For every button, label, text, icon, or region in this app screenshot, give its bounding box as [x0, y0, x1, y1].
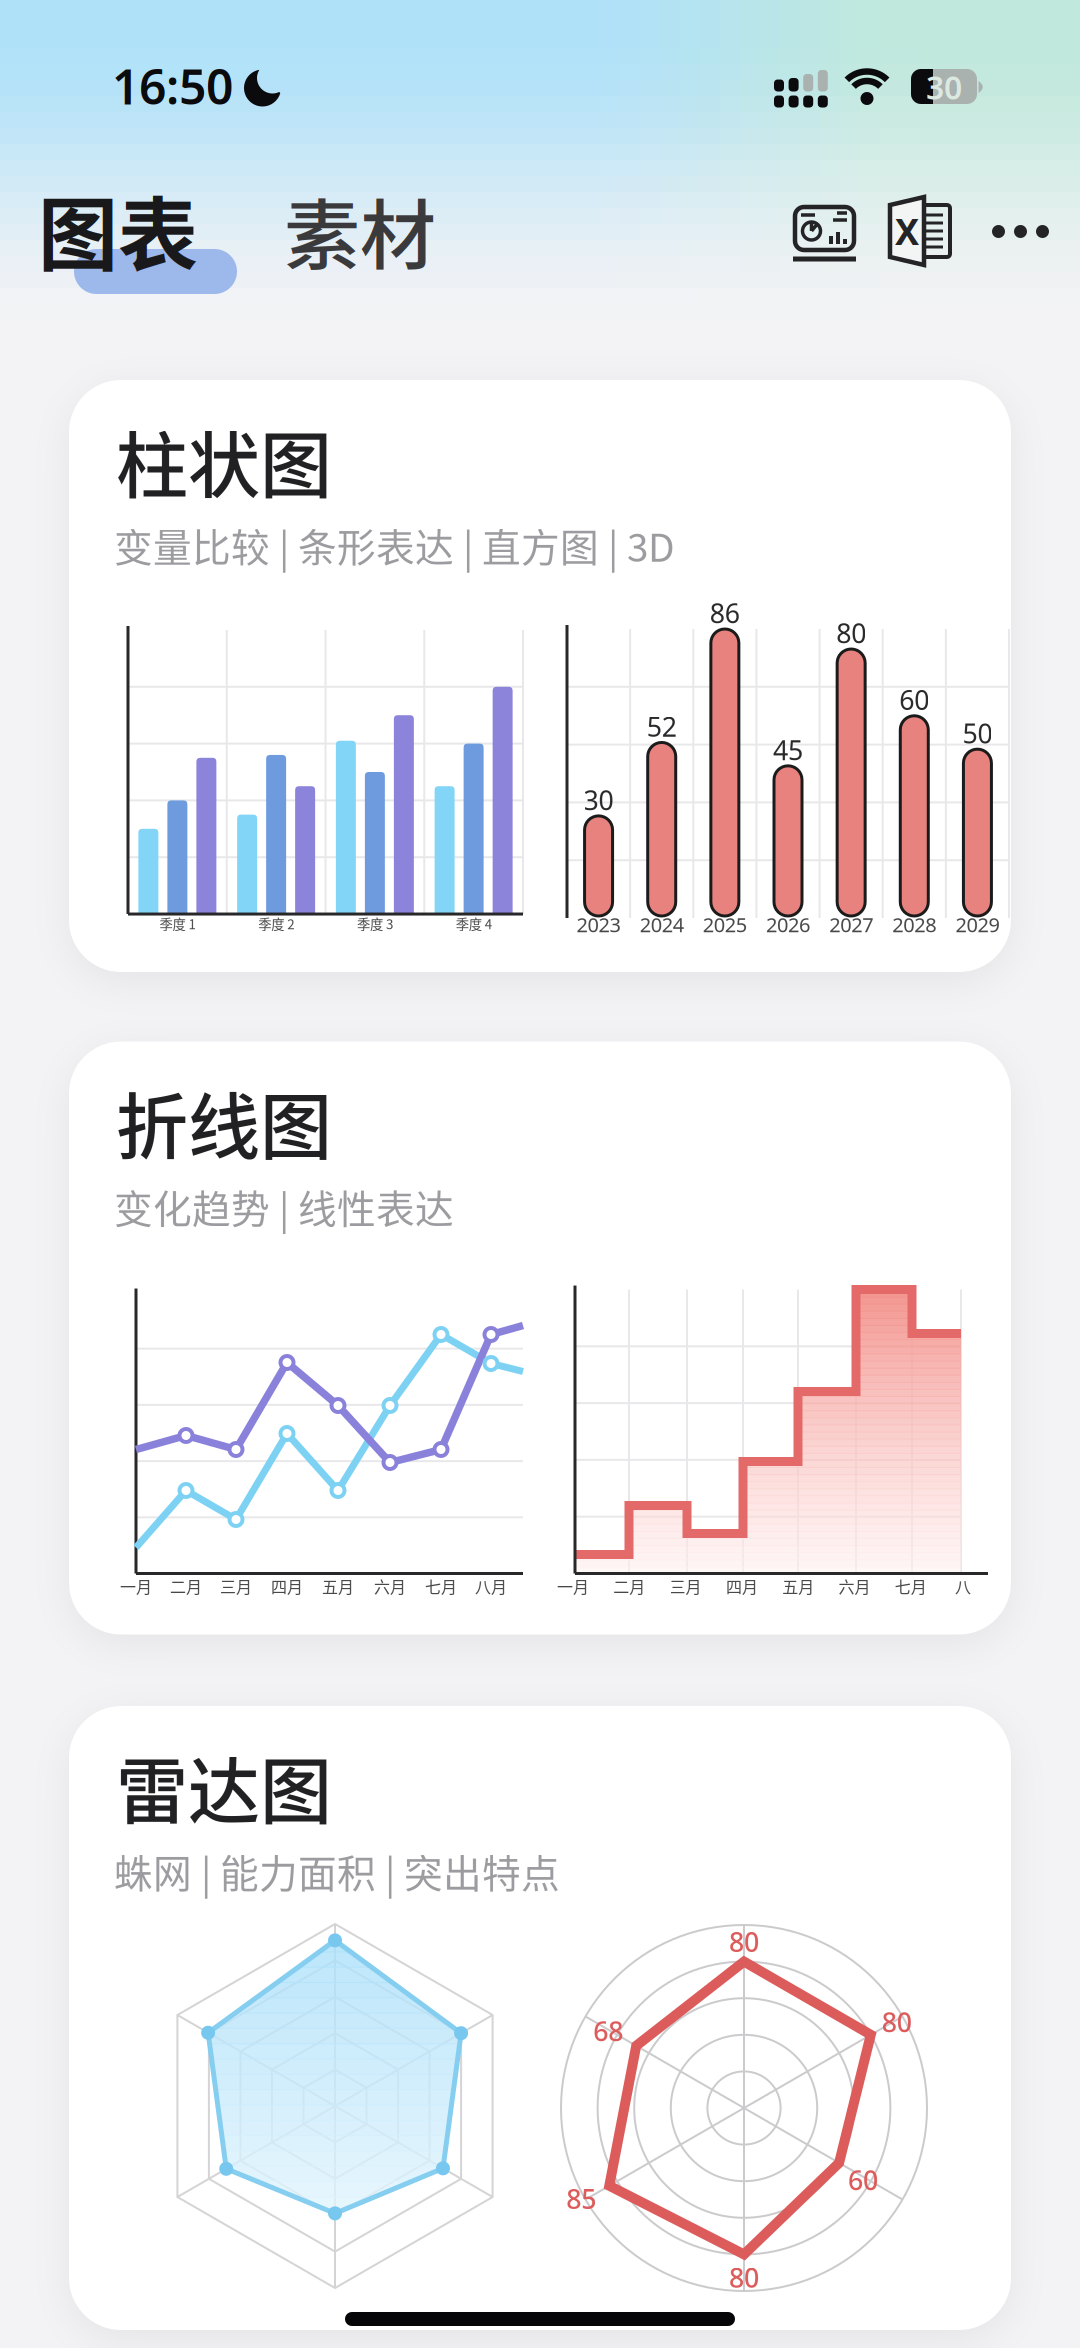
staticText: 六月 [374, 1574, 406, 1598]
staticText: 16:50 [112, 54, 233, 118]
staticText: 52 [647, 709, 677, 744]
staticText: 一月 [557, 1574, 589, 1598]
staticText: 一月 [120, 1574, 152, 1598]
staticText: 80 [836, 615, 866, 651]
staticText: 柱状图 [116, 408, 332, 512]
staticText: 30 [584, 782, 614, 818]
staticText: 变量比较 | 条形表达 | 直方图 | 3D [114, 517, 675, 573]
staticText: 85 [566, 2181, 596, 2216]
staticText: 图表 [38, 171, 198, 287]
staticText: 六月 [838, 1574, 870, 1598]
staticText: 60 [899, 682, 929, 717]
button[interactable]: 更多 [992, 225, 1049, 238]
staticText: 2029 [955, 911, 999, 938]
staticText: 季度 4 [456, 914, 492, 933]
staticText: 2028 [892, 911, 936, 938]
staticText: 四月 [271, 1574, 303, 1598]
staticText: 2025 [703, 911, 747, 938]
staticText: 七月 [425, 1574, 457, 1598]
staticText: 三月 [670, 1574, 702, 1598]
button[interactable]: 素材 [284, 175, 436, 285]
staticText: 68 [593, 2013, 623, 2048]
button[interactable]: 柱状图 [69, 380, 1011, 972]
staticText: 季度 3 [357, 914, 393, 933]
staticText: 季度 1 [159, 914, 195, 933]
staticText: 60 [848, 2162, 878, 2198]
staticText: 80 [729, 2260, 759, 2295]
staticText: 80 [882, 2004, 912, 2039]
staticText: 蛛网 | 能力面积 | 突出特点 [114, 1843, 560, 1899]
staticText: 二月 [170, 1574, 202, 1598]
staticText: 折线图 [116, 1069, 332, 1174]
staticText: 八 [955, 1574, 971, 1598]
staticText: 2024 [640, 911, 684, 938]
staticText: 2023 [577, 911, 621, 938]
staticText: 2026 [766, 911, 810, 938]
staticText: 雷达图 [116, 1734, 332, 1838]
staticText: 二月 [613, 1574, 645, 1598]
staticText: 变化趋势 | 线性表达 [114, 1178, 454, 1234]
button[interactable]: 雷达图 [69, 1706, 1011, 2330]
staticText: 八月 [475, 1574, 507, 1598]
staticText: 2027 [829, 911, 873, 938]
staticText: 七月 [895, 1574, 927, 1598]
staticText: 三月 [220, 1574, 252, 1598]
staticText: X [895, 207, 919, 255]
staticText: 五月 [782, 1574, 814, 1598]
staticText: 80 [729, 1924, 759, 1959]
staticText: 45 [773, 732, 803, 767]
button[interactable]: 导出 Excel [888, 197, 952, 265]
staticText: 五月 [322, 1574, 354, 1598]
staticText: 86 [710, 595, 740, 631]
button[interactable]: 图表 [36, 168, 246, 298]
staticText: 季度 2 [258, 914, 294, 933]
staticText: 30 [926, 66, 962, 108]
staticText: 50 [962, 715, 992, 751]
button[interactable]: 折线图 [69, 1041, 1011, 1634]
button[interactable]: 图表面板 [793, 202, 857, 264]
staticText: 素材 [284, 175, 436, 285]
staticText: 四月 [726, 1574, 758, 1598]
